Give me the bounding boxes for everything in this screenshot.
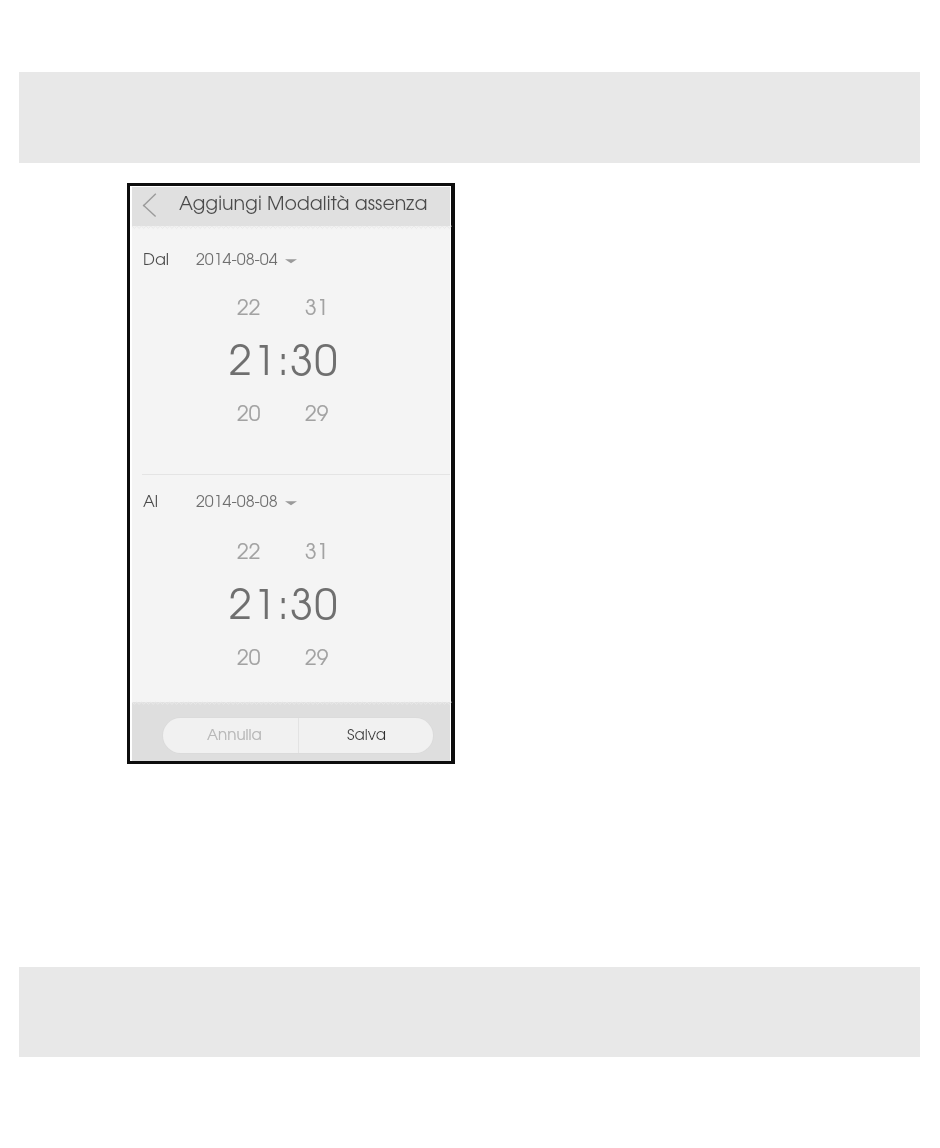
staticText: 22: [237, 299, 261, 319]
staticText: 20: [237, 649, 261, 669]
staticText: Annulla: [207, 729, 262, 743]
staticText: Dal: [143, 253, 170, 268]
button[interactable]: Annulla: [163, 718, 298, 753]
staticText: Al: [143, 495, 159, 510]
staticText: 20: [237, 405, 261, 425]
staticText: 21:30: [229, 589, 339, 627]
staticText: 29: [305, 649, 329, 669]
button[interactable]: Salva: [299, 718, 433, 753]
button[interactable]: 2014-08-04: [196, 253, 297, 268]
button[interactable]: Back: [136, 188, 164, 222]
staticText: 31: [305, 543, 329, 563]
staticText: Aggiungi Modalità assenza: [179, 196, 428, 214]
staticText: 21:30: [229, 345, 339, 383]
staticText: 22: [237, 543, 261, 563]
staticText: 2014-08-04: [196, 253, 278, 268]
staticText: 29: [305, 405, 329, 425]
staticText: 2014-08-08: [196, 495, 278, 510]
staticText: Salva: [347, 729, 386, 743]
staticText: 31: [305, 299, 329, 319]
button[interactable]: 2014-08-08: [196, 495, 297, 510]
